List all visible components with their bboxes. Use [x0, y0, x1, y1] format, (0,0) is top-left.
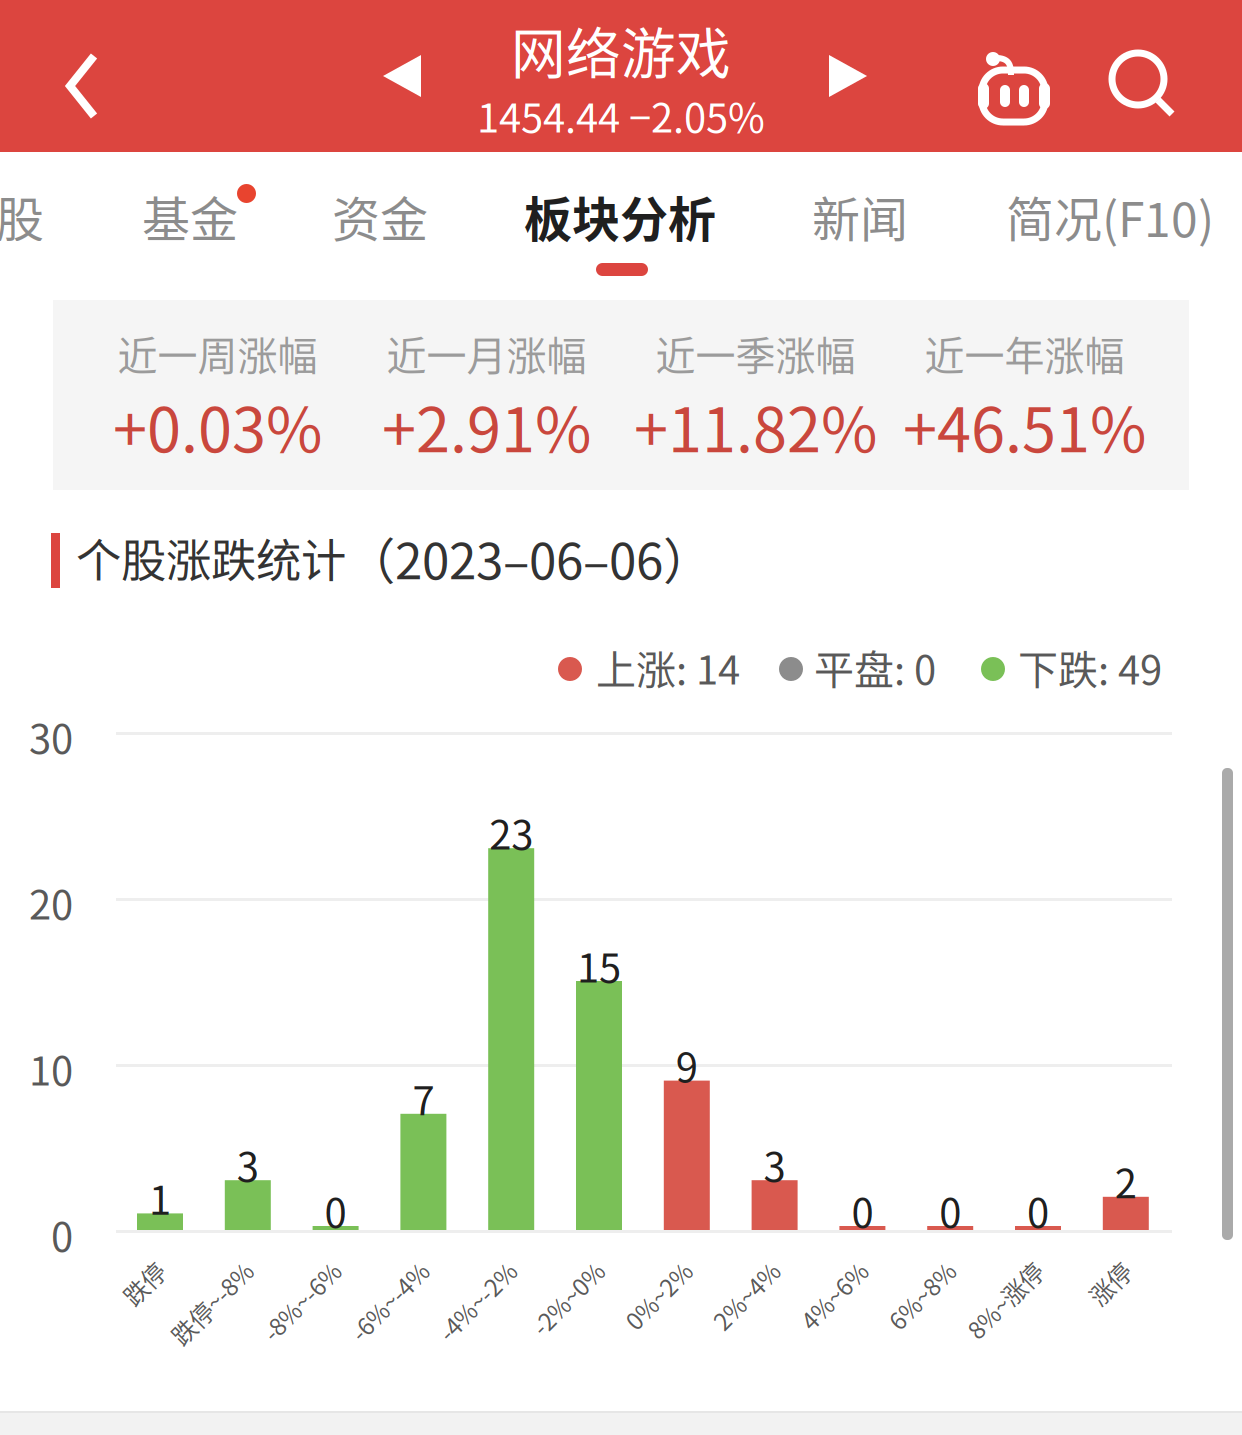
staticText: 新闻: [812, 181, 908, 251]
staticText: 15: [577, 936, 621, 994]
staticText: 网络游戏: [511, 10, 731, 89]
button[interactable]: 板块分析: [524, 181, 720, 251]
staticText: 基金: [142, 181, 238, 251]
staticText: 23: [489, 803, 533, 861]
button[interactable]: 基金: [142, 181, 234, 251]
staticText: 下跌: 49: [1018, 638, 1162, 696]
staticText: 0: [325, 1181, 347, 1239]
button[interactable]: 简况(F10): [1006, 181, 1218, 251]
staticText: 9: [676, 1036, 698, 1093]
staticText: 简况(F10): [1006, 181, 1214, 251]
button[interactable]: Search: [1112, 53, 1176, 119]
staticText: 近一季涨幅: [655, 324, 855, 382]
staticText: 0: [939, 1181, 961, 1239]
staticText: 10: [29, 1039, 73, 1097]
button[interactable]: Assistant: [978, 52, 1050, 120]
staticText: （2023–06–06）: [346, 522, 712, 593]
staticText: 跌停: [151, 1341, 199, 1375]
staticText: 近一月涨幅: [386, 324, 586, 382]
staticText: 1454.44 −2.05%: [477, 86, 765, 144]
staticText: +0.03%: [113, 381, 322, 470]
staticText: 近一年涨幅: [924, 324, 1124, 382]
staticText: 7: [412, 1069, 434, 1127]
button[interactable]: Back: [22, 52, 142, 120]
staticText: 板块分析: [524, 181, 716, 251]
staticText: 资金: [332, 181, 428, 251]
button[interactable]: 股: [0, 181, 88, 251]
staticText: 3: [237, 1135, 259, 1193]
staticText: 股: [0, 181, 44, 251]
button[interactable]: 新闻: [812, 181, 904, 251]
staticText: 上涨: 14: [596, 638, 740, 696]
staticText: 个股涨跌统计: [76, 525, 346, 590]
staticText: +46.51%: [903, 381, 1146, 470]
staticText: 1: [149, 1168, 171, 1226]
staticText: 20: [29, 873, 73, 931]
staticText: 跌停~-8%: [183, 1341, 287, 1375]
staticText: 2: [1115, 1152, 1137, 1210]
staticText: 0: [1027, 1181, 1049, 1239]
staticText: 平盘: 0: [814, 638, 936, 696]
button[interactable]: Next: [808, 55, 888, 97]
staticText: 30: [29, 707, 73, 765]
staticText: 0: [51, 1205, 73, 1263]
staticText: 0: [851, 1181, 873, 1239]
button[interactable]: Previous: [362, 55, 442, 97]
staticText: 3: [764, 1135, 786, 1193]
staticText: +2.91%: [382, 381, 591, 470]
staticText: 近一周涨幅: [117, 324, 317, 382]
button[interactable]: 资金: [332, 181, 424, 251]
staticText: +11.82%: [634, 381, 877, 470]
